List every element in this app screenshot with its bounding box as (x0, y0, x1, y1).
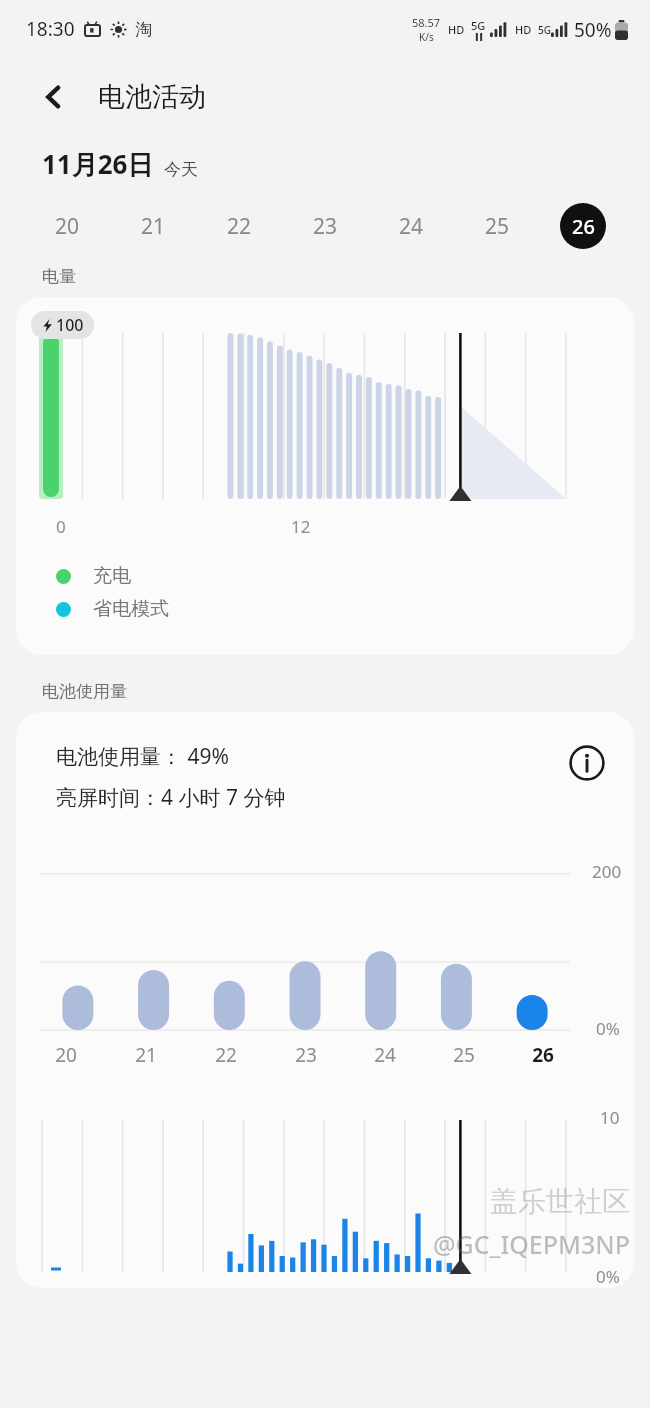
staticText: 5G (538, 23, 551, 37)
staticText: HD (448, 22, 465, 37)
staticText: 25 (453, 1042, 475, 1068)
staticText: 26 (532, 1042, 554, 1068)
staticText: @GC_IQEPM3NP (433, 1227, 630, 1261)
button[interactable]: 20 (26, 1042, 106, 1068)
button[interactable]: 26 (540, 200, 626, 252)
button[interactable]: 省电模式 (16, 597, 634, 621)
button[interactable]: 20 (24, 200, 110, 252)
staticText: 58.57 (412, 15, 441, 30)
staticText: 电量 (42, 266, 76, 287)
staticText: 今天 (164, 159, 198, 180)
button[interactable]: 25 (424, 1042, 503, 1068)
staticText: 21 (141, 212, 166, 241)
staticText: 电池活动 (98, 80, 206, 114)
button[interactable]: 21 (106, 1042, 186, 1068)
button[interactable]: Back (30, 73, 78, 121)
staticText: 电池使用量 (42, 681, 127, 702)
staticText: 12 (291, 515, 311, 538)
staticText: 18:30 (26, 16, 75, 42)
staticText: 24 (399, 212, 424, 241)
staticText: 0 (56, 515, 66, 538)
staticText: 10 (600, 1106, 620, 1129)
staticText: 11月26日 (42, 146, 154, 182)
button[interactable]: 100 (16, 297, 634, 655)
staticText: 充电 (93, 564, 131, 588)
staticText: 盖乐世社区 (490, 1184, 630, 1219)
staticText: 200 (592, 860, 622, 883)
staticText: 22 (227, 212, 252, 241)
staticText: 23 (313, 212, 338, 241)
staticText: 100 (56, 314, 84, 336)
staticText: 20 (55, 212, 80, 241)
button[interactable]: 24 (368, 200, 454, 252)
staticText: 亮屏时间：4 小时 7 分钟 (56, 783, 286, 812)
staticText: 24 (374, 1042, 396, 1068)
staticText: 淘 (135, 19, 152, 40)
staticText: 5G (471, 18, 486, 33)
staticText: 0% (596, 1265, 620, 1288)
staticText: 21 (135, 1042, 157, 1068)
button[interactable]: 21 (110, 200, 196, 252)
staticText: 省电模式 (93, 597, 169, 621)
button[interactable]: 22 (196, 200, 282, 252)
button[interactable]: 26 (503, 1042, 582, 1068)
button[interactable]: 22 (186, 1042, 266, 1068)
button[interactable]: 23 (266, 1042, 345, 1068)
button[interactable]: Info (566, 742, 608, 784)
staticText: HD (515, 22, 532, 37)
button[interactable]: 25 (454, 200, 540, 252)
button[interactable]: 23 (282, 200, 368, 252)
staticText: 电池使用量： 49% (56, 742, 229, 771)
staticText: 20 (55, 1042, 77, 1068)
staticText: 26 (572, 213, 595, 240)
staticText: 50% (574, 17, 612, 43)
button[interactable]: 充电 (16, 564, 634, 588)
staticText: K/s (419, 30, 434, 44)
staticText: 0% (596, 1017, 620, 1040)
staticText: 23 (295, 1042, 317, 1068)
staticText: 25 (485, 212, 510, 241)
staticText: 22 (215, 1042, 237, 1068)
button[interactable]: 24 (345, 1042, 424, 1068)
